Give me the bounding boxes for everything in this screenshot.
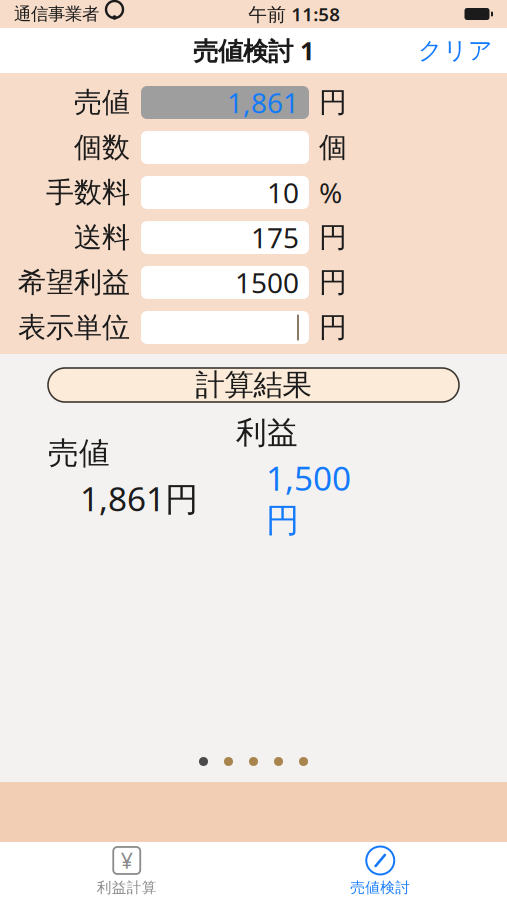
staticText: 175 <box>251 219 299 256</box>
staticText: 円 <box>319 310 347 345</box>
staticText: 1,861円 <box>80 476 198 520</box>
staticText: 円 <box>319 220 347 255</box>
staticText: 売値 <box>74 85 130 120</box>
staticText: 計算結果 <box>195 367 311 403</box>
staticText: 円 <box>319 265 347 300</box>
staticText: 10 <box>267 174 299 211</box>
staticText: 1,861 <box>227 84 299 121</box>
staticText: 希望利益 <box>18 265 130 300</box>
staticText: 1,500円 <box>266 456 351 541</box>
staticText: 通信事業者 <box>14 3 99 25</box>
button[interactable]: ¥ <box>0 842 253 900</box>
staticText <box>99 0 105 29</box>
button[interactable]: 計算結果 <box>48 368 459 402</box>
staticText: 売値検討 <box>350 878 410 896</box>
button[interactable]: 売値検討 <box>253 842 507 900</box>
staticText: 午前 11:58 <box>248 2 340 26</box>
button[interactable] <box>141 131 309 164</box>
staticText: % <box>319 174 342 211</box>
staticText: 売値検討 1 <box>193 34 314 67</box>
staticText: クリア <box>418 36 493 65</box>
staticText: 円 <box>319 85 347 120</box>
staticText: 個数 <box>74 130 130 165</box>
button[interactable]: クリア <box>404 28 507 72</box>
staticText: 1500 <box>235 264 299 301</box>
button[interactable]: 1,861 <box>141 86 309 119</box>
staticText: 送料 <box>74 220 130 255</box>
staticText: 利益 <box>236 414 298 452</box>
button[interactable]: 1500 <box>141 266 309 299</box>
button[interactable]: 175 <box>141 221 309 254</box>
staticText: 表示単位 <box>18 310 130 345</box>
staticText: 利益計算 <box>97 878 157 896</box>
button[interactable]: 10 <box>141 176 309 209</box>
staticText: 個 <box>319 130 347 165</box>
button[interactable] <box>141 311 309 344</box>
staticText: 手数料 <box>46 175 130 210</box>
staticText: ¥ <box>121 846 133 875</box>
staticText: 売値 <box>48 434 110 472</box>
